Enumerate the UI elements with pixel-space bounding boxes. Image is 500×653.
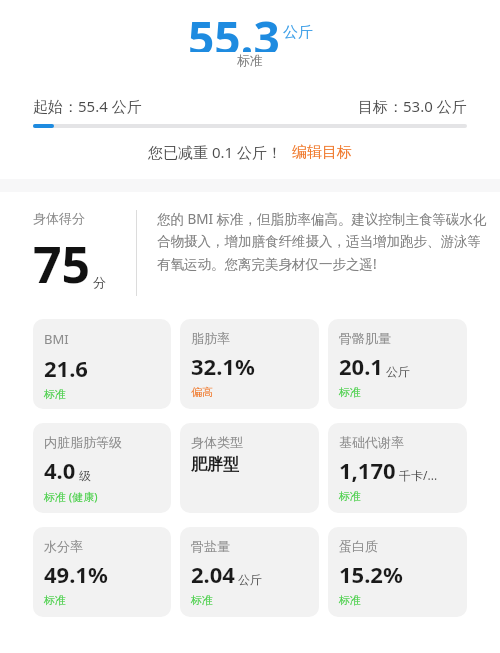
staticText: 标准 — [191, 593, 213, 607]
staticText: 49.1% — [44, 559, 108, 589]
staticText: 脂肪率 — [191, 330, 230, 346]
staticText: 您已减重 0.1 公斤！ — [148, 142, 282, 162]
button[interactable]: 内脏脂肪等级 — [33, 423, 171, 513]
staticText: 基础代谢率 — [339, 434, 404, 450]
button[interactable]: 身体类型 — [180, 423, 319, 513]
staticText: 标准 — [339, 385, 361, 399]
staticText: 1,170 — [339, 455, 396, 485]
staticText: 公斤 — [238, 572, 262, 587]
staticText: 编辑目标 — [292, 143, 352, 162]
button[interactable]: 编辑目标 — [292, 143, 352, 162]
staticText: 身体类型 — [191, 434, 243, 450]
staticText: 20.1 — [339, 351, 383, 381]
staticText: 公斤 — [386, 364, 410, 379]
button[interactable]: 蛋白质 — [328, 527, 467, 617]
staticText: 标准 — [44, 387, 66, 401]
staticText: 75 — [33, 230, 91, 296]
staticText: 公斤 — [283, 23, 313, 42]
staticText: 32.1% — [191, 351, 255, 381]
staticText: 15.2% — [339, 559, 403, 589]
staticText: 21.6 — [44, 353, 88, 383]
staticText: 55.3 — [188, 6, 280, 52]
staticText: 级 — [79, 468, 91, 483]
staticText: 您的 BMI 标准，但脂肪率偏高。建议控制主食等碳水化合物摄入，增加膳食纤维摄入… — [157, 210, 488, 273]
button[interactable]: 脂肪率 — [180, 319, 319, 409]
button[interactable]: 基础代谢率 — [328, 423, 467, 513]
button[interactable]: 水分率 — [33, 527, 171, 617]
staticText: 标准 (健康) — [44, 489, 98, 504]
staticText: 2.04 — [191, 559, 235, 589]
staticText: 标准 — [237, 52, 263, 68]
staticText: 骨骼肌量 — [339, 330, 391, 346]
staticText: 骨盐量 — [191, 538, 230, 554]
staticText: 千卡/... — [399, 467, 438, 483]
staticText: 标准 — [44, 593, 66, 607]
staticText: 身体得分 — [33, 210, 85, 226]
staticText: 起始：55.4 公斤 — [33, 96, 142, 116]
staticText: 水分率 — [44, 538, 83, 554]
staticText: 内脏脂肪等级 — [44, 434, 122, 450]
staticText: 4.0 — [44, 455, 76, 485]
staticText: 蛋白质 — [339, 538, 378, 554]
staticText: 分 — [93, 274, 106, 290]
staticText: 标准 — [339, 489, 361, 503]
staticText: BMI — [44, 330, 69, 348]
staticText: 偏高 — [191, 385, 213, 399]
staticText: 目标：53.0 公斤 — [358, 96, 467, 116]
staticText: 肥胖型 — [191, 455, 239, 475]
button[interactable]: BMI — [33, 319, 171, 409]
button[interactable]: 骨骼肌量 — [328, 319, 467, 409]
button[interactable]: 骨盐量 — [180, 527, 319, 617]
staticText: 标准 — [339, 593, 361, 607]
